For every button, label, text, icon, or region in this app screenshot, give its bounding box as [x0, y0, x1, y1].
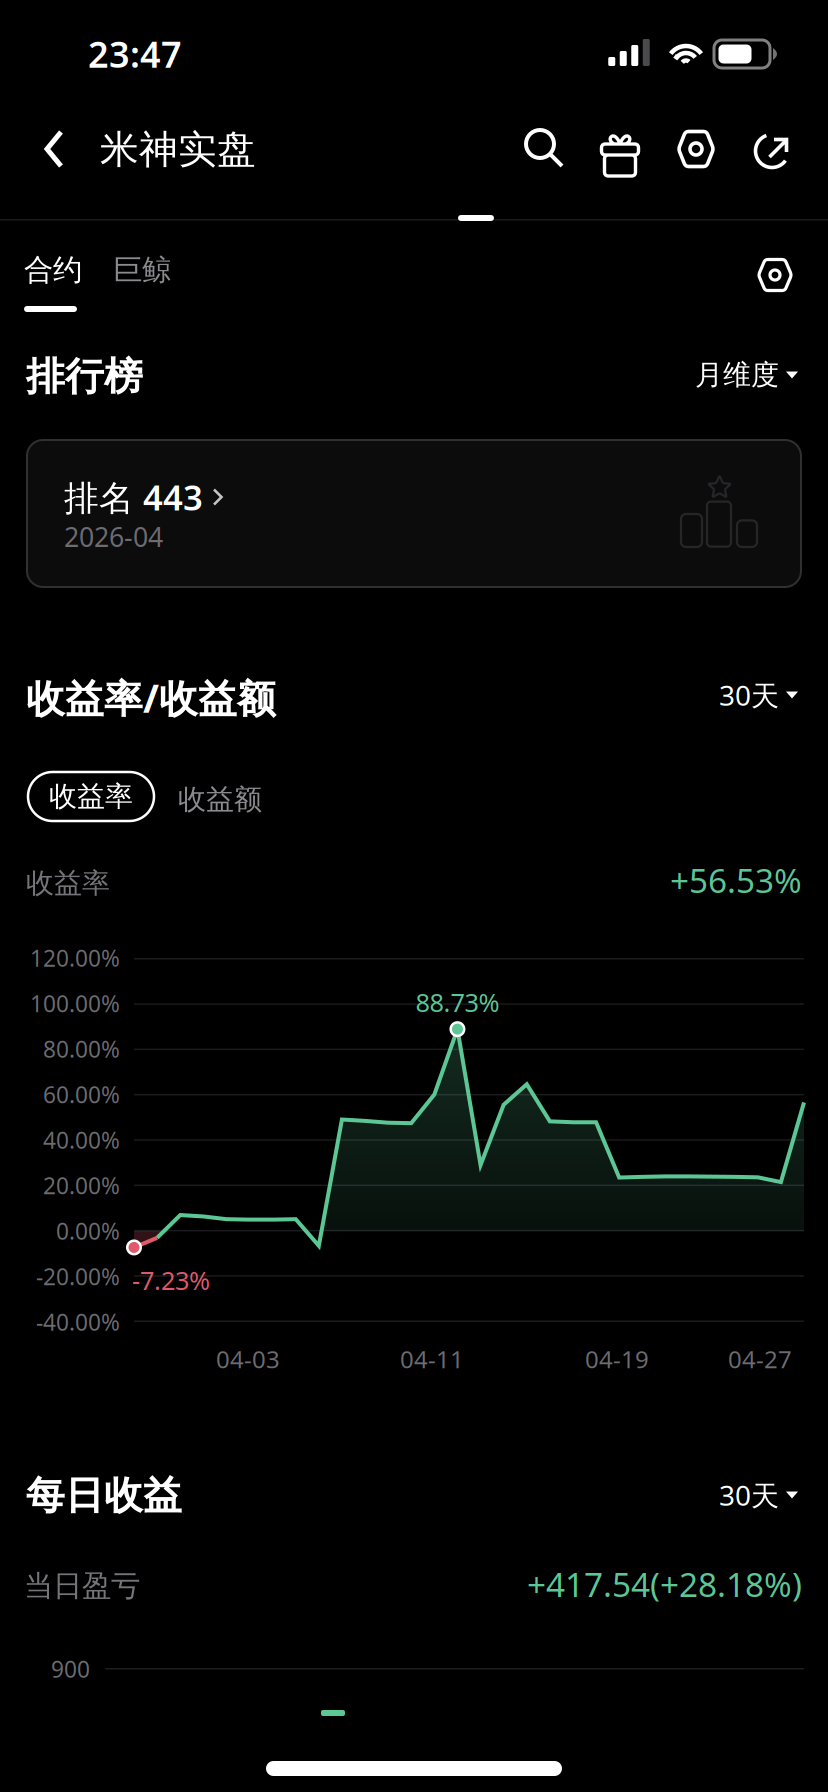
staticText: 2026-04: [64, 519, 163, 554]
staticText: 0.00%: [56, 1216, 120, 1246]
staticText: 巨鲸: [113, 252, 171, 288]
staticText: 米神实盘: [100, 126, 256, 173]
staticText: 20.00%: [43, 1170, 120, 1200]
staticText: 当日盈亏: [24, 1568, 140, 1604]
staticText: 80.00%: [43, 1034, 120, 1064]
staticText: 120.00%: [30, 943, 120, 973]
button[interactable]: Share: [734, 110, 810, 186]
staticText: 月维度: [695, 358, 779, 392]
button[interactable]: 30天: [636, 1471, 798, 1519]
button[interactable]: 收益额: [161, 775, 279, 824]
button[interactable]: 月维度: [636, 351, 798, 399]
button[interactable]: 30天: [636, 671, 798, 719]
staticText: 23:47: [88, 30, 182, 78]
staticText: 30天: [719, 676, 779, 714]
staticText: 每日收益: [26, 1472, 182, 1519]
button[interactable]: Rewards: [582, 110, 658, 186]
staticText: 60.00%: [43, 1079, 120, 1109]
staticText: 收益率: [26, 866, 110, 900]
staticText: +417.54(+28.18%): [527, 1562, 802, 1606]
button[interactable]: Settings: [658, 110, 734, 186]
staticText: 收益率: [49, 779, 133, 814]
button[interactable]: 巨鲸: [113, 252, 209, 302]
staticText: 100.00%: [30, 988, 120, 1018]
staticText: 900: [51, 1654, 90, 1684]
staticText: 合约: [24, 252, 82, 288]
staticText: -40.00%: [36, 1307, 120, 1337]
button[interactable]: Back: [24, 110, 84, 188]
staticText: 排行榜: [26, 353, 143, 400]
staticText: -7.23%: [132, 1263, 210, 1297]
staticText: 04-03: [216, 1343, 280, 1375]
button[interactable]: Filter: [744, 244, 806, 306]
staticText: -20.00%: [36, 1261, 120, 1291]
staticText: 收益额: [178, 782, 262, 817]
staticText: 30天: [719, 1476, 779, 1514]
button[interactable]: Search: [506, 110, 582, 186]
staticText: 04-11: [400, 1343, 464, 1375]
staticText: 排名 443: [64, 474, 203, 520]
button[interactable]: 收益率: [28, 772, 154, 821]
staticText: 40.00%: [43, 1125, 120, 1155]
staticText: 收益率/收益额: [26, 672, 276, 723]
staticText: 04-27: [728, 1343, 792, 1375]
staticText: 88.73%: [415, 985, 499, 1019]
button[interactable]: 排名 443: [27, 440, 801, 587]
button[interactable]: 合约: [24, 252, 120, 332]
staticText: +56.53%: [670, 858, 802, 902]
staticText: 04-19: [585, 1343, 649, 1375]
